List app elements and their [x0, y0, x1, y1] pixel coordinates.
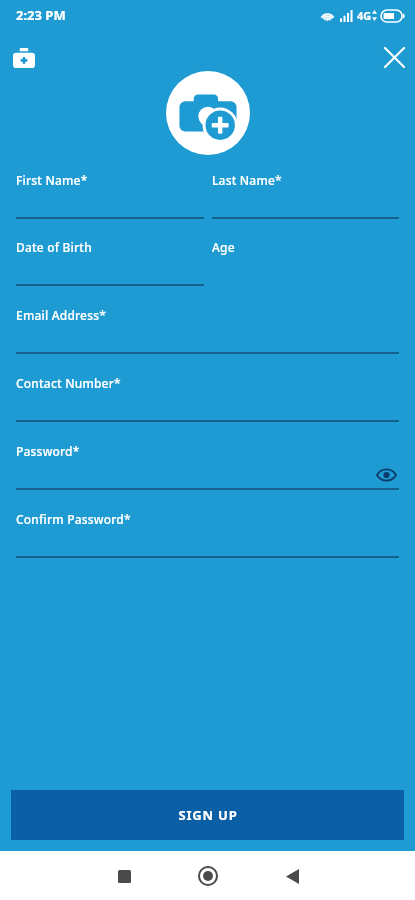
button[interactable]: Back	[275, 859, 309, 893]
button[interactable]: Show password	[373, 462, 399, 488]
staticText: 2:23 PM	[16, 6, 66, 24]
staticText: 4G	[357, 8, 372, 23]
button[interactable]: Medical kit	[8, 42, 40, 74]
button[interactable]: Contact Number*	[16, 375, 399, 422]
staticText: Email Address*	[16, 307, 107, 323]
staticText: Confirm Password*	[16, 511, 131, 527]
staticText: SIGN UP	[178, 806, 238, 824]
button[interactable]: Recents	[107, 859, 141, 893]
staticText: First Name*	[16, 172, 88, 188]
button[interactable]: SIGN UP	[11, 790, 404, 840]
button[interactable]: Confirm Password*	[16, 511, 399, 558]
button[interactable]: Close	[377, 40, 411, 74]
button[interactable]: Email Address*	[16, 307, 399, 354]
staticText: Contact Number*	[16, 375, 121, 391]
staticText: Last Name*	[212, 172, 282, 188]
button[interactable]: Add profile photo	[166, 71, 250, 155]
staticText: Date of Birth	[16, 239, 92, 255]
staticText: Age	[212, 239, 235, 255]
button[interactable]: Home	[191, 859, 225, 893]
staticText: Password*	[16, 443, 80, 459]
